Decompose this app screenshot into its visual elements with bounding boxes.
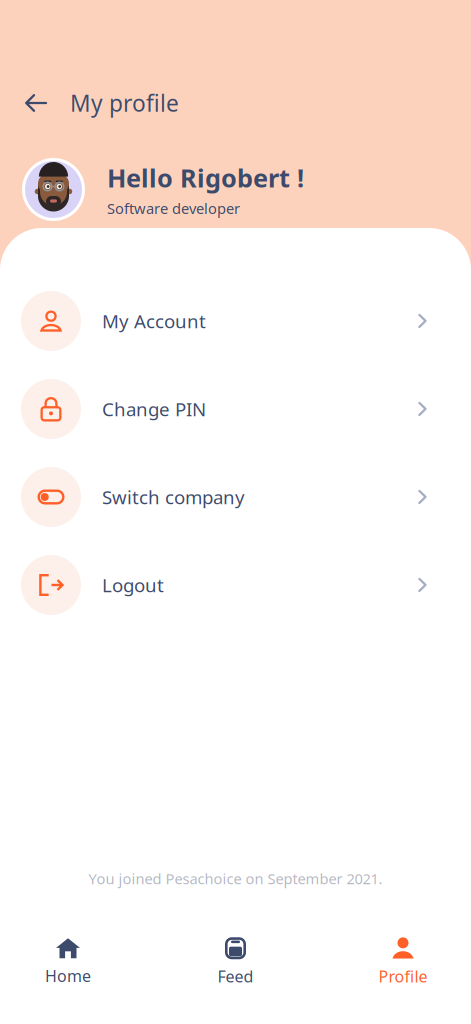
button[interactable]: My Account: [0, 277, 471, 365]
staticText: Switch company: [102, 485, 245, 509]
button[interactable]: Switch company: [0, 453, 471, 541]
staticText: Feed: [217, 966, 253, 987]
staticText: Home: [45, 965, 91, 986]
button[interactable]: Back: [14, 81, 58, 125]
button[interactable]: Change PIN: [0, 365, 471, 453]
staticText: Hello Rigobert !: [107, 161, 304, 194]
staticText: My Account: [102, 309, 206, 333]
button[interactable]: Home: [0, 938, 136, 986]
staticText: Change PIN: [102, 397, 206, 421]
staticText: Software developer: [107, 199, 240, 218]
button[interactable]: Feed: [167, 937, 303, 987]
staticText: Logout: [102, 573, 164, 597]
button[interactable]: Profile: [335, 937, 471, 987]
button[interactable]: Logout: [0, 541, 471, 629]
staticText: My profile: [70, 88, 179, 118]
staticText: You joined Pesachoice on September 2021.: [88, 869, 382, 888]
staticText: Profile: [378, 966, 427, 987]
